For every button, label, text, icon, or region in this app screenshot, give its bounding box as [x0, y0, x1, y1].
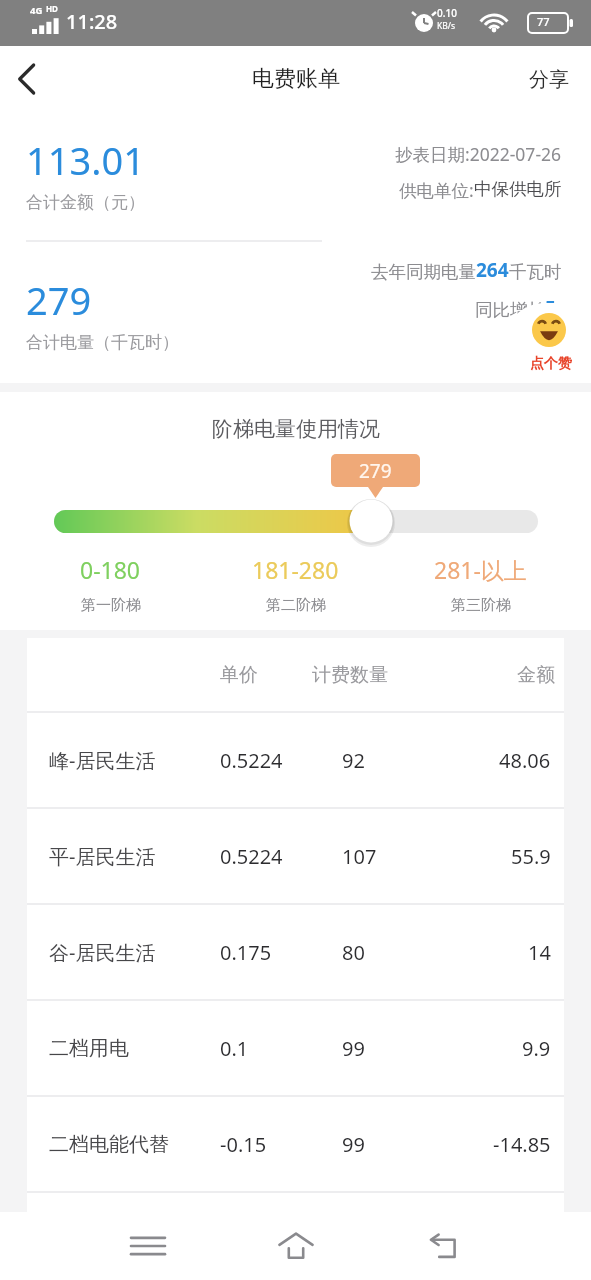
staticText: 平-居民生活: [49, 843, 156, 870]
staticText: 供电单位:: [399, 178, 474, 202]
button[interactable]: 峰-居民生活: [27, 713, 564, 807]
staticText: 9.9: [522, 1035, 551, 1062]
staticText: -0.15: [220, 1131, 267, 1158]
button[interactable]: 分享: [521, 59, 577, 100]
staticText: 第二阶梯: [266, 596, 326, 615]
staticText: 5.: [545, 295, 562, 321]
staticText: 合计金额（元）: [26, 192, 145, 213]
staticText: 55.9: [511, 843, 551, 870]
staticText: 0-180: [80, 554, 141, 585]
staticText: 107: [342, 843, 377, 870]
button[interactable]: 谷-居民生活: [27, 905, 564, 999]
button[interactable]: 主屏幕: [256, 1212, 336, 1280]
staticText: 99: [342, 1131, 365, 1158]
staticText: 0.5224: [220, 843, 283, 870]
button[interactable]: 点个赞: [505, 303, 591, 381]
staticText: 281-以上: [434, 554, 527, 585]
staticText: 第三阶梯: [451, 596, 511, 615]
staticText: 11:28: [66, 8, 118, 35]
button[interactable]: 二档用电: [27, 1001, 564, 1095]
staticText: 阶梯电量使用情况: [212, 416, 380, 442]
staticText: 中保供电所: [474, 178, 562, 200]
staticText: 千瓦时: [509, 261, 562, 283]
staticText: 单价: [220, 663, 258, 687]
staticText: 分享: [529, 67, 569, 92]
staticText: 去年同期电量: [371, 261, 476, 283]
staticText: 抄表日期:2022-07-26: [395, 142, 562, 166]
staticText: 181-280: [252, 554, 339, 585]
button[interactable]: 最近任务: [108, 1212, 188, 1280]
staticText: 金额: [517, 663, 555, 687]
button[interactable]: 平-居民生活: [27, 809, 564, 903]
staticText: 80: [342, 939, 365, 966]
staticText: 点个赞: [530, 355, 572, 373]
staticText: 0.175: [220, 939, 272, 966]
button[interactable]: 返回: [0, 46, 58, 112]
staticText: 计费数量: [312, 663, 388, 687]
staticText: 合计电量（千瓦时）: [26, 332, 179, 353]
button[interactable]: 返回: [405, 1212, 485, 1280]
staticText: -14.85: [493, 1131, 551, 1158]
staticText: 0.5224: [220, 747, 283, 774]
staticText: 4G: [30, 4, 43, 17]
staticText: 0.1: [220, 1035, 249, 1062]
button[interactable]: 二档电能代替: [27, 1097, 564, 1191]
staticText: 279: [359, 458, 392, 484]
staticText: 峰-居民生活: [49, 747, 156, 774]
staticText: 48.06: [499, 747, 551, 774]
staticText: 谷-居民生活: [49, 939, 156, 966]
staticText: 92: [342, 747, 365, 774]
staticText: 77: [537, 14, 550, 29]
staticText: KB/s: [437, 20, 456, 32]
staticText: 电费账单: [252, 65, 340, 93]
staticText: 264: [476, 257, 509, 283]
staticText: 第一阶梯: [81, 596, 141, 615]
staticText: HD: [46, 3, 58, 14]
staticText: 14: [528, 939, 551, 966]
staticText: 二档电能代替: [49, 1132, 169, 1157]
staticText: 同比增长: [475, 299, 545, 321]
staticText: 0.10: [437, 6, 457, 20]
staticText: 279: [26, 274, 92, 326]
staticText: 113.01: [26, 134, 145, 186]
staticText: 二档用电: [49, 1036, 129, 1061]
staticText: 99: [342, 1035, 365, 1062]
